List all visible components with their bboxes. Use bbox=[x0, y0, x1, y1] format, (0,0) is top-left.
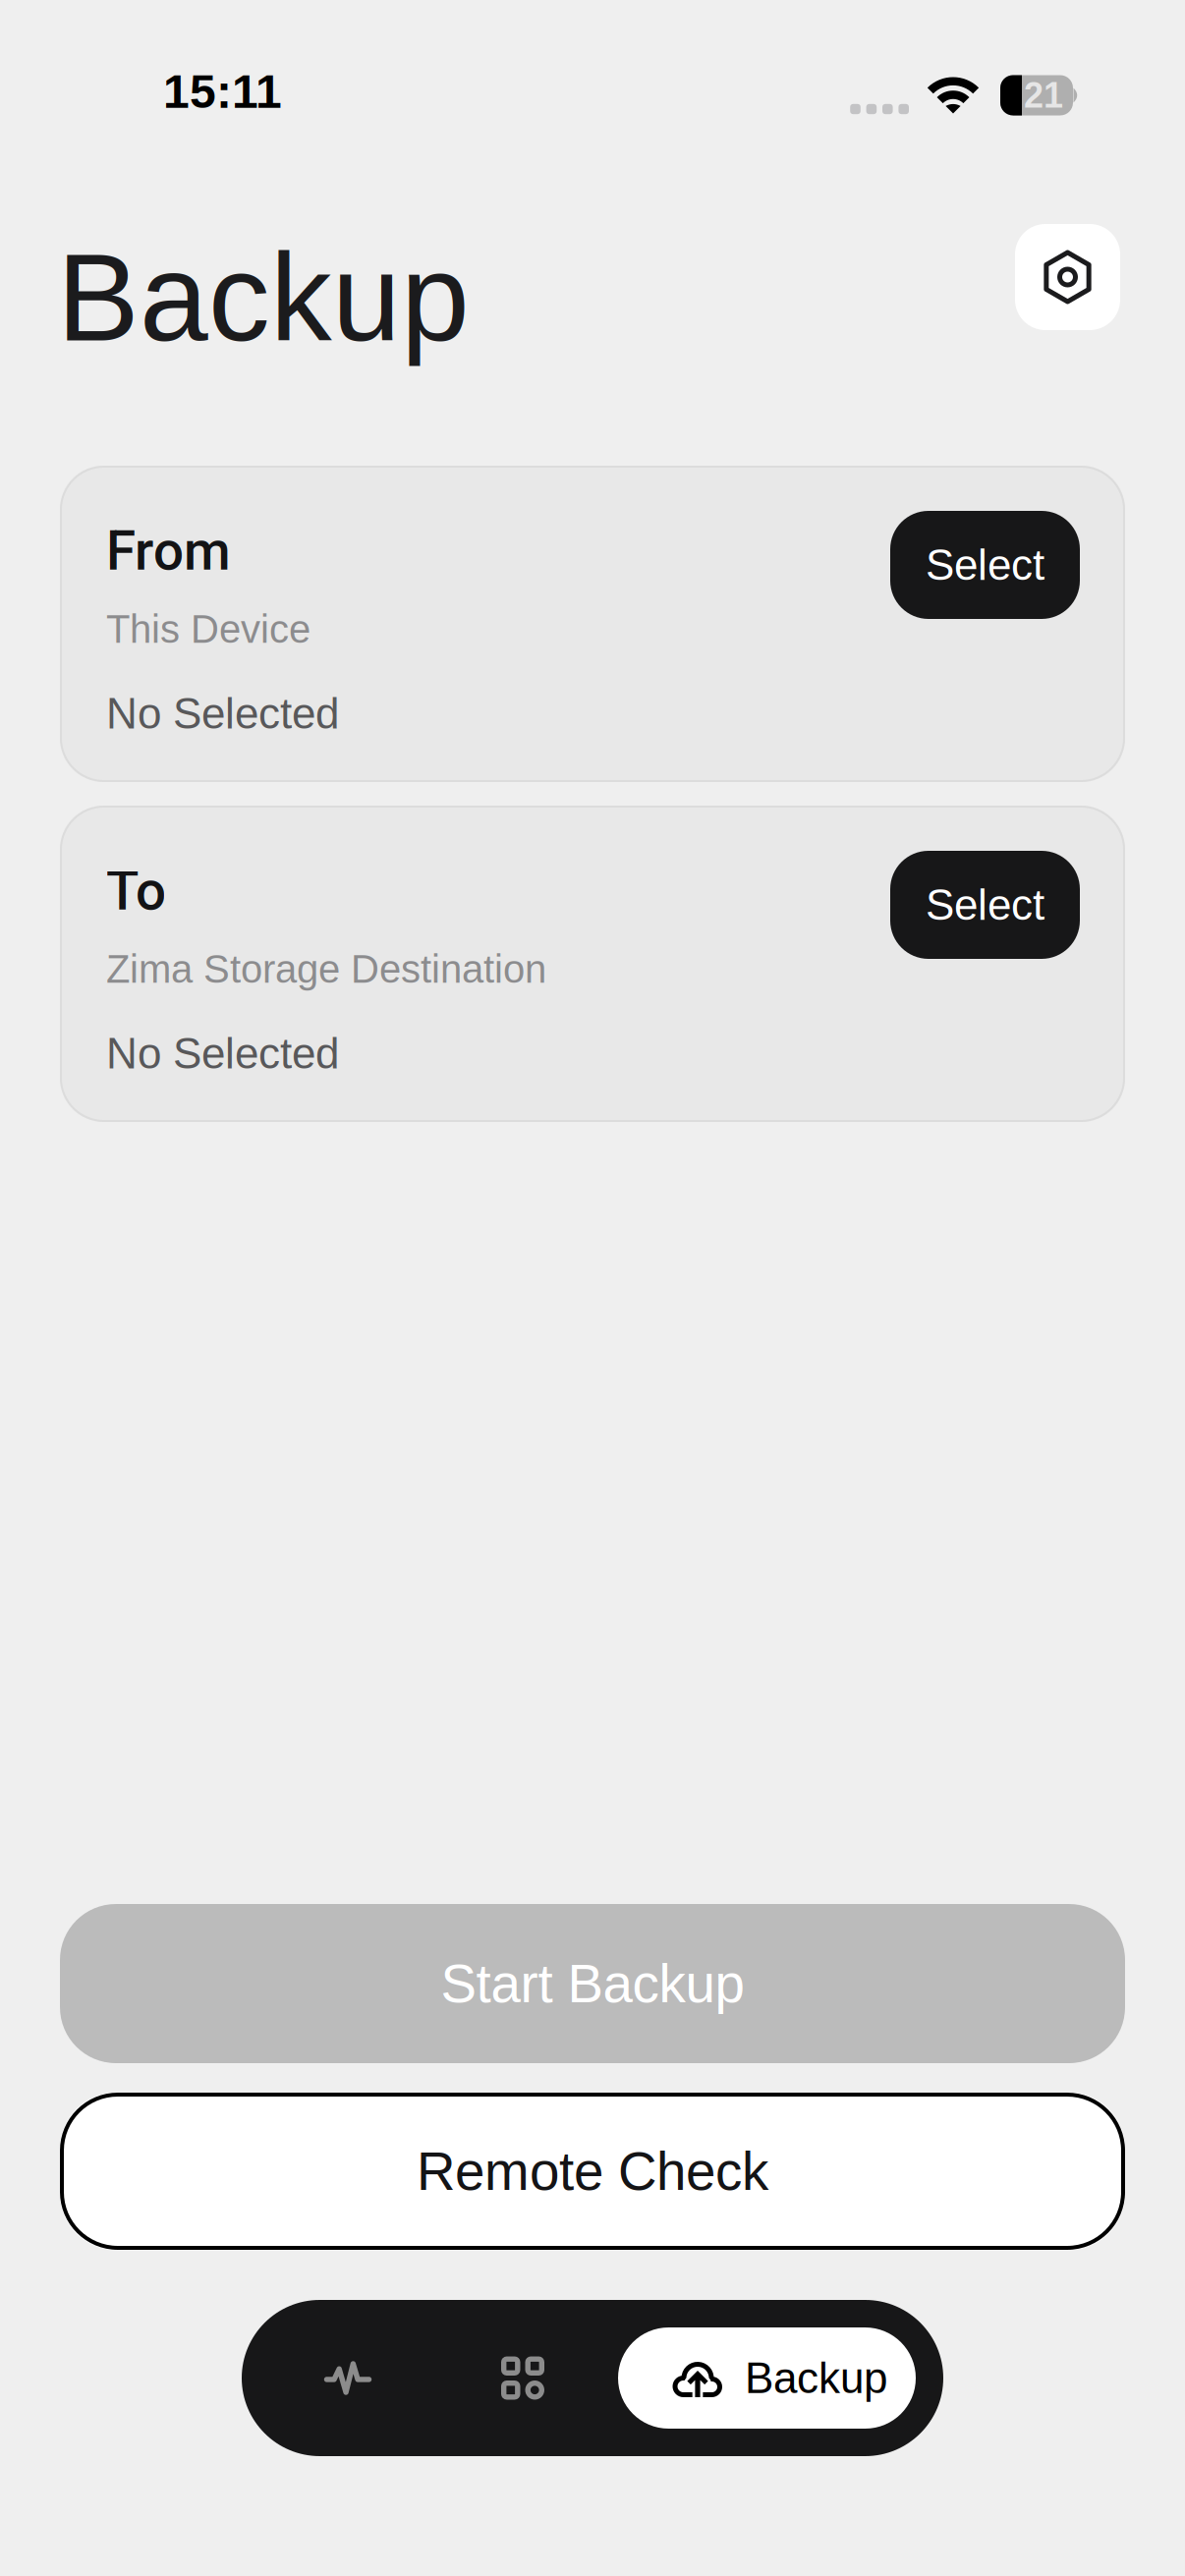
staticText: To bbox=[106, 860, 166, 923]
button[interactable]: Settings bbox=[1015, 224, 1120, 330]
button[interactable]: Activity bbox=[279, 2300, 417, 2456]
staticText: Select bbox=[926, 881, 1044, 929]
button[interactable]: Select bbox=[890, 851, 1080, 959]
button[interactable]: Select bbox=[890, 511, 1080, 619]
staticText: Remote Check bbox=[417, 2141, 768, 2201]
button[interactable]: Remote Check bbox=[60, 2093, 1125, 2250]
staticText: No Selected bbox=[106, 689, 339, 738]
staticText: Backup bbox=[745, 2354, 887, 2402]
staticText: Backup bbox=[57, 229, 470, 366]
staticText: Start Backup bbox=[441, 1954, 744, 2014]
staticText: This Device bbox=[106, 607, 310, 651]
staticText: Zima Storage Destination bbox=[106, 947, 546, 991]
button[interactable]: Start Backup bbox=[60, 1904, 1125, 2063]
button[interactable]: Apps bbox=[454, 2300, 592, 2456]
staticText: 15:11 bbox=[163, 65, 281, 118]
staticText: 21 bbox=[1024, 76, 1063, 115]
staticText: No Selected bbox=[106, 1029, 339, 1078]
button[interactable]: Backup bbox=[618, 2327, 916, 2429]
staticText: From bbox=[106, 520, 231, 583]
staticText: Select bbox=[926, 541, 1044, 589]
